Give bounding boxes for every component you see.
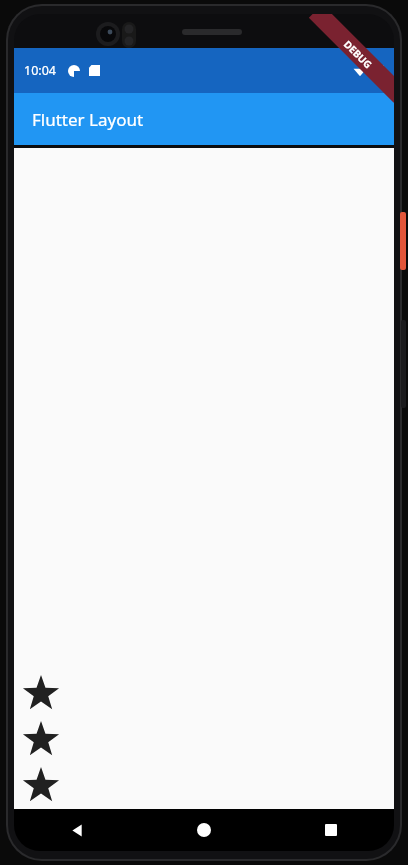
button[interactable]: Back <box>14 809 140 851</box>
staticText: Flutter Layout <box>32 108 144 131</box>
button[interactable]: Home <box>140 809 267 851</box>
button[interactable]: Recent apps <box>267 809 394 851</box>
button[interactable]: Star <box>18 717 64 763</box>
staticText: 10:04 <box>24 62 56 79</box>
button[interactable]: Star <box>18 671 64 717</box>
staticText: DEBUG <box>341 37 375 71</box>
button[interactable]: Star <box>18 763 64 809</box>
